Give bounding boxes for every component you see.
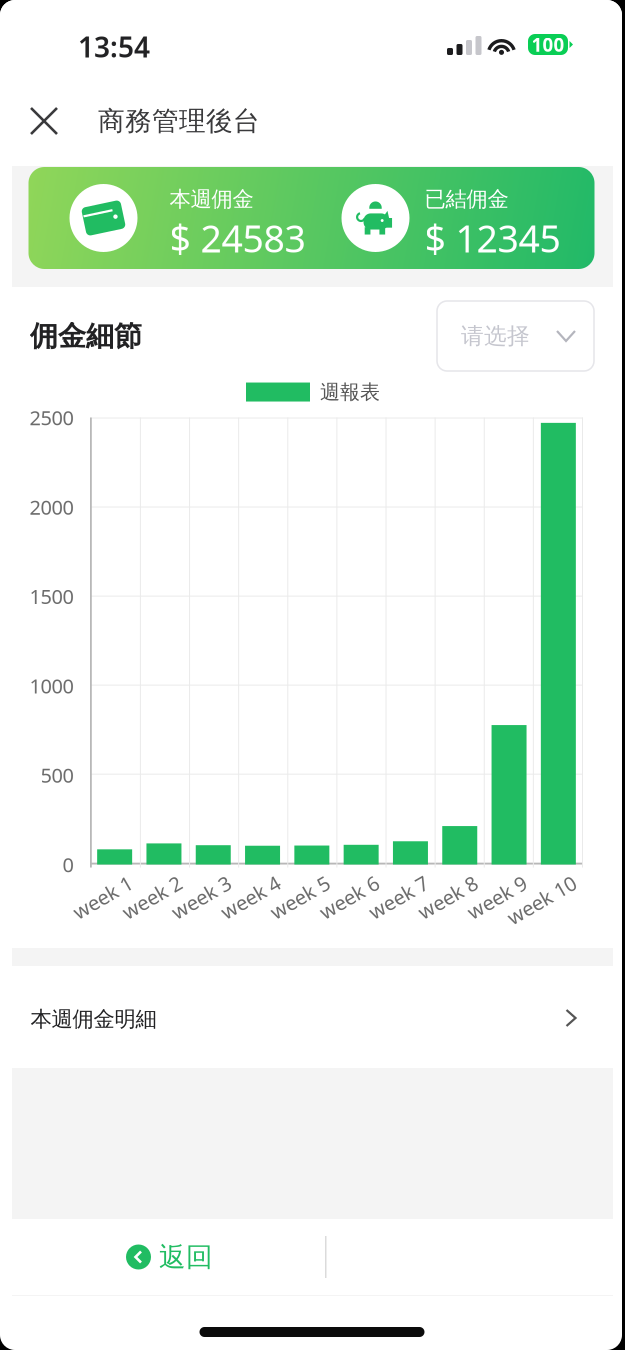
staticText: 500 <box>40 762 73 788</box>
button[interactable]: 本週佣金明細 <box>12 966 613 1068</box>
staticText: week 9 <box>466 890 531 917</box>
staticText: 返回 <box>159 1241 213 1273</box>
staticText: 本週佣金 <box>169 186 253 212</box>
staticText: 100 <box>531 32 564 57</box>
staticText: week 10 <box>504 890 580 917</box>
staticText: 2000 <box>29 494 73 520</box>
staticText: 0 <box>62 851 73 878</box>
staticText: 2500 <box>29 404 73 431</box>
staticText: week 7 <box>367 890 432 917</box>
staticText: week 6 <box>318 890 383 917</box>
staticText: 商務管理後台 <box>98 105 260 137</box>
button[interactable]: 请选择 <box>437 301 594 371</box>
staticText: 请选择 <box>461 322 530 350</box>
staticText: 佣金細節 <box>30 319 142 353</box>
staticText: week 3 <box>170 890 235 917</box>
staticText: week 8 <box>417 890 482 917</box>
staticText: week 4 <box>219 890 284 917</box>
button[interactable]: Close <box>16 93 72 149</box>
staticText: week 5 <box>269 890 334 917</box>
staticText: 已結佣金 <box>424 186 508 212</box>
staticText: $ 24583 <box>169 213 305 263</box>
staticText: 13:54 <box>78 28 150 65</box>
staticText: week 1 <box>72 890 137 917</box>
staticText: 本週佣金明細 <box>30 1006 156 1032</box>
staticText: $ 12345 <box>424 213 560 263</box>
staticText: 1500 <box>29 583 73 610</box>
staticText: 1000 <box>29 672 73 699</box>
staticText: 週報表 <box>320 380 380 404</box>
staticText: week 2 <box>121 890 186 917</box>
button[interactable]: 返回 <box>126 1226 266 1288</box>
